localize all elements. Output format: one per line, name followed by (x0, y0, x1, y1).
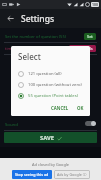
staticText: Select (18, 51, 41, 62)
staticText: Stop seeing this ad (15, 172, 49, 177)
staticText: 100 (92, 2, 98, 7)
staticText: Settings (21, 13, 55, 25)
button[interactable]: OK (75, 104, 86, 112)
button[interactable]: time each question (0, 43, 101, 54)
button[interactable]: Stop seeing this ad (12, 170, 52, 179)
button[interactable]: Set the number of question (55) (0, 31, 101, 42)
button[interactable]: 55 question (Point tables) (11, 90, 90, 101)
staticText: OK (77, 105, 84, 111)
button[interactable]: SAVE (4, 132, 97, 143)
button[interactable]: Sound (0, 117, 101, 130)
staticText: Set (87, 34, 93, 39)
staticText: 100 question (without zero) (28, 82, 82, 88)
button[interactable]: Back (4, 12, 17, 25)
staticText: Sound (5, 121, 18, 127)
button[interactable]: Ads by Google ⓘ (54, 170, 90, 179)
staticText: CANCEL (51, 105, 69, 111)
staticText: 55 question (Point tables) (28, 93, 78, 99)
staticText: Ad closed by Google (32, 162, 70, 167)
button[interactable]: CANCEL (49, 104, 71, 112)
staticText: Ads by Google ⓘ (57, 172, 87, 177)
staticText: Set the number of question (55) (5, 34, 66, 40)
staticText: 121 question (all) (28, 71, 62, 77)
button[interactable]: 100 question (without zero) (11, 79, 90, 90)
staticText: time each question (5, 46, 42, 52)
staticText: 20 seconds (72, 46, 93, 51)
button[interactable]: 121 question (all) (11, 68, 90, 79)
staticText: SAVE (40, 134, 54, 142)
